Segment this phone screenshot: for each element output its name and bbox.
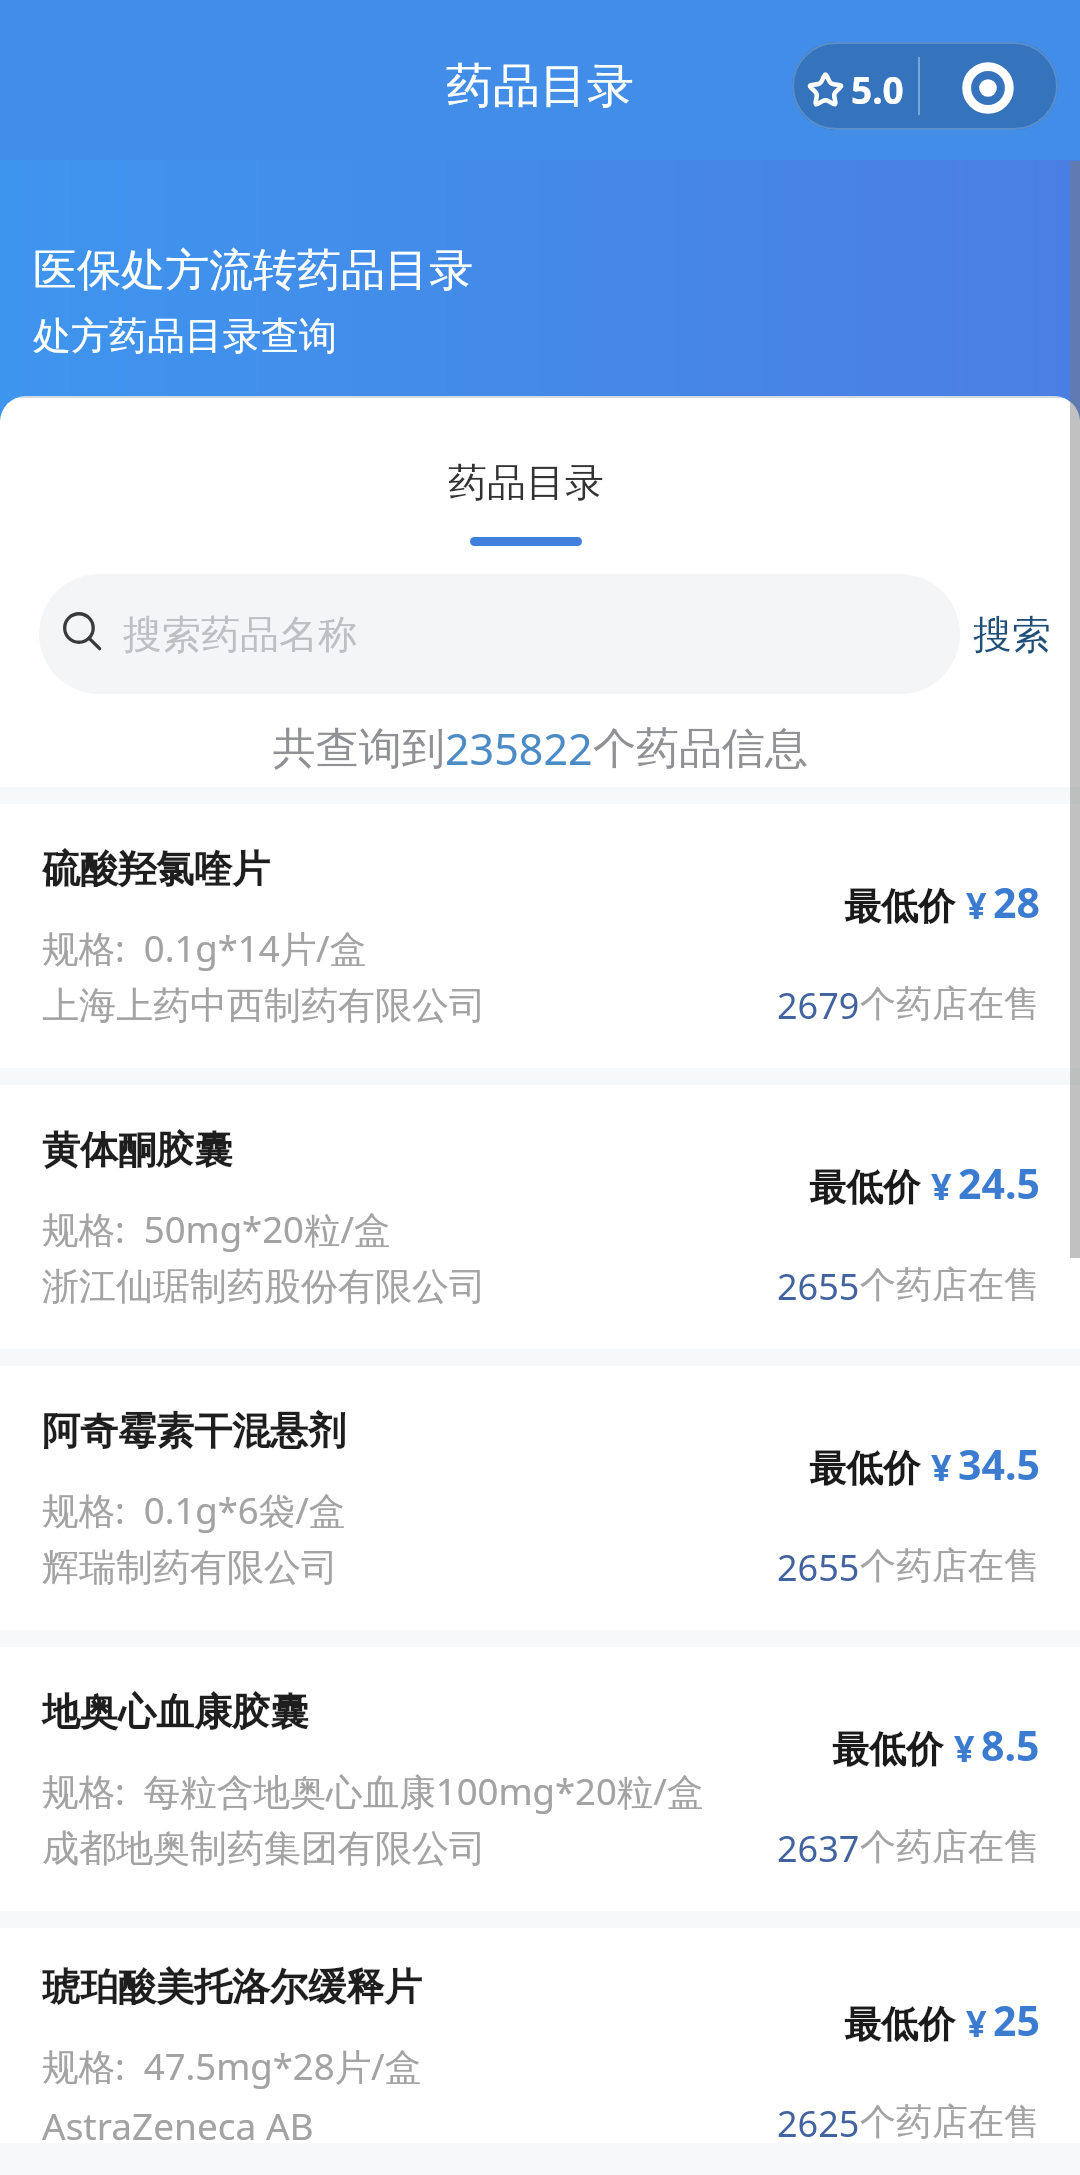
staticText: 上海上药中西制药有限公司	[42, 982, 486, 1029]
staticText: 规格: 47.5mg*28片/盒	[42, 2041, 422, 2091]
staticText: ¥	[931, 1162, 952, 1211]
staticText: 搜索	[973, 610, 1051, 659]
staticText: 黄体酮胶囊	[42, 1126, 232, 1174]
staticText: 个药店在售	[860, 2099, 1040, 2143]
staticText: 235822	[445, 719, 593, 778]
staticText: 共查询到	[273, 722, 445, 776]
staticText: 24.5	[958, 1155, 1040, 1211]
button[interactable]: Rating 5.0 and menu	[792, 42, 1058, 130]
staticText: ¥	[954, 1724, 975, 1773]
staticText: 医保处方流转药品目录	[33, 243, 473, 298]
staticText: 2655	[777, 1543, 860, 1592]
staticText: 琥珀酸美托洛尔缓释片	[42, 1963, 422, 2011]
staticText: 浙江仙琚制药股份有限公司	[42, 1263, 486, 1310]
button[interactable]: 药品目录	[434, 458, 618, 546]
staticText: 最低价	[844, 883, 955, 930]
staticText: 最低价	[809, 1445, 920, 1492]
staticText: 5.0	[851, 64, 904, 114]
staticText: 规格: 每粒含地奥心血康100mg*20粒/盒	[42, 1766, 704, 1816]
button[interactable]: 硫酸羟氯喹片	[0, 804, 1080, 1068]
staticText: 阿奇霉素干混悬剂	[42, 1407, 346, 1455]
staticText: 个药店在售	[860, 1543, 1040, 1588]
button[interactable]: 琥珀酸美托洛尔缓释片	[0, 1928, 1080, 2143]
button[interactable]: 黄体酮胶囊	[0, 1085, 1080, 1349]
staticText: 2637	[777, 1824, 860, 1873]
staticText: ¥	[966, 881, 987, 930]
staticText: 规格: 0.1g*14片/盒	[42, 923, 367, 973]
staticText: 25	[993, 1992, 1040, 2048]
staticText: ¥	[931, 1443, 952, 1492]
staticText: 成都地奥制药集团有限公司	[42, 1825, 486, 1872]
button[interactable]: 阿奇霉素干混悬剂	[0, 1366, 1080, 1630]
staticText: 规格: 0.1g*6袋/盒	[42, 1485, 346, 1535]
staticText: 最低价	[844, 2001, 955, 2048]
staticText: 最低价	[832, 1726, 943, 1773]
staticText: 药品目录	[446, 57, 634, 116]
staticText: 最低价	[809, 1164, 920, 1211]
staticText: 8.5	[981, 1717, 1040, 1773]
other: Search	[61, 611, 107, 657]
button[interactable]: 搜索	[960, 602, 1051, 667]
other: More options	[962, 62, 1014, 114]
staticText: ¥	[966, 1999, 987, 2048]
staticText: 2655	[777, 1262, 860, 1311]
staticText: 个药店在售	[860, 1262, 1040, 1307]
staticText: 2679	[777, 981, 860, 1030]
staticText: 辉瑞制药有限公司	[42, 1544, 338, 1591]
button[interactable]: 地奥心血康胶囊	[0, 1647, 1080, 1911]
staticText: 规格: 50mg*20粒/盒	[42, 1204, 391, 1254]
staticText: AstraZeneca AB	[42, 2100, 314, 2143]
staticText: 34.5	[958, 1436, 1040, 1492]
staticText: 2625	[777, 2099, 860, 2143]
staticText: 个药店在售	[860, 1824, 1040, 1869]
staticText: 地奥心血康胶囊	[42, 1688, 308, 1736]
staticText: 个药品信息	[593, 722, 808, 776]
button[interactable]: Search	[39, 574, 960, 694]
staticText: 个药店在售	[860, 981, 1040, 1026]
staticText: 处方药品目录查询	[33, 312, 337, 360]
staticText: 硫酸羟氯喹片	[42, 845, 270, 893]
staticText: 搜索药品名称	[123, 610, 357, 659]
staticText: 28	[993, 874, 1040, 930]
staticText: 药品目录	[448, 458, 604, 507]
